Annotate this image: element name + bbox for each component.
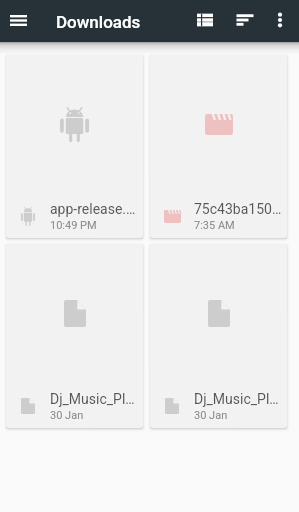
button[interactable]: Dj_Music_Pl… <box>150 244 287 428</box>
staticText: 10:49 PM <box>50 219 97 232</box>
button[interactable]: Dj_Music_Pl… <box>6 244 143 428</box>
button[interactable]: More options <box>264 4 296 36</box>
staticText: Dj_Music_Pl… <box>50 391 135 407</box>
staticText: 30 Jan <box>194 409 228 422</box>
staticText: 30 Jan <box>50 409 84 422</box>
button[interactable]: Change view <box>189 4 221 36</box>
button[interactable]: 75c43ba150… <box>150 55 287 238</box>
staticText: 7:35 AM <box>194 219 235 232</box>
button[interactable]: Sort <box>229 4 261 36</box>
button[interactable]: Open navigation drawer <box>6 8 31 33</box>
staticText: 75c43ba150… <box>194 201 281 217</box>
staticText: Downloads <box>56 12 141 32</box>
staticText: app-release.… <box>50 201 136 217</box>
button[interactable]: app-release.… <box>6 55 143 238</box>
staticText: Dj_Music_Pl… <box>194 391 279 407</box>
